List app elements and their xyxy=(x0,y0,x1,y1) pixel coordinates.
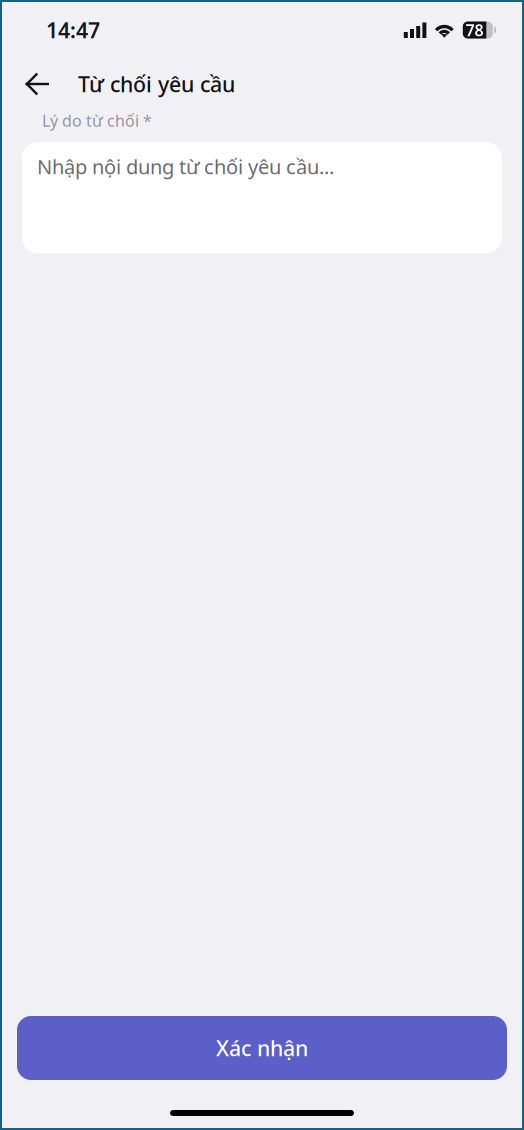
button[interactable]: Xác nhận xyxy=(17,1016,507,1080)
staticText: 14:47 xyxy=(46,16,100,44)
staticText: Xác nhận xyxy=(216,1034,308,1062)
staticText: Lý do từ chối * xyxy=(42,110,152,131)
button[interactable]: Back xyxy=(15,62,59,106)
staticText: Nhập nội dung từ chối yêu cầu... xyxy=(37,153,334,180)
staticText: Từ chối yêu cầu xyxy=(78,70,235,98)
staticText: 78 xyxy=(466,19,484,41)
